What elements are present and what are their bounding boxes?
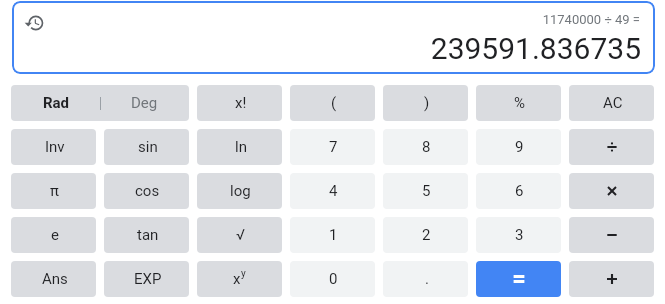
button[interactable]: Rad: [11, 85, 189, 121]
staticText: cos: [135, 182, 160, 200]
staticText: 9: [515, 138, 524, 156]
staticText: (: [331, 94, 337, 112]
button[interactable]: 8: [383, 129, 468, 165]
button[interactable]: 7: [290, 129, 375, 165]
staticText: 2: [422, 226, 431, 244]
button[interactable]: cos: [104, 173, 189, 209]
button[interactable]: log: [197, 173, 282, 209]
staticText: ln: [235, 138, 247, 156]
staticText: Rad: [43, 94, 70, 112]
staticText: 4: [329, 182, 338, 200]
button[interactable]: History: [13, 1, 57, 45]
button[interactable]: ln: [197, 129, 282, 165]
button[interactable]: Equals: [476, 261, 561, 297]
button[interactable]: Ans: [11, 261, 96, 297]
button[interactable]: 2: [383, 217, 468, 253]
button[interactable]: Divide: [569, 129, 654, 165]
staticText: tan: [137, 226, 159, 244]
button[interactable]: %: [476, 85, 561, 121]
staticText: 5: [422, 182, 431, 200]
staticText: x!: [235, 94, 247, 112]
button[interactable]: Subtract: [569, 217, 654, 253]
button[interactable]: Inv: [11, 129, 96, 165]
staticText: 1: [329, 226, 338, 244]
staticText: 11740000 ÷ 49 =: [12, 12, 640, 27]
staticText: 3: [515, 226, 524, 244]
staticText: .: [425, 270, 429, 288]
button[interactable]: sin: [104, 129, 189, 165]
staticText: ): [424, 94, 430, 112]
button[interactable]: (: [290, 85, 375, 121]
button[interactable]: e: [11, 217, 96, 253]
button[interactable]: 3: [476, 217, 561, 253]
button[interactable]: Add: [569, 261, 654, 297]
staticText: log: [230, 182, 251, 200]
button[interactable]: 1: [290, 217, 375, 253]
staticText: Deg: [131, 94, 158, 112]
staticText: 7: [329, 138, 338, 156]
button[interactable]: 9: [476, 129, 561, 165]
staticText: 8: [422, 138, 431, 156]
staticText: e: [51, 226, 59, 244]
button[interactable]: .: [383, 261, 468, 297]
button[interactable]: 4: [290, 173, 375, 209]
staticText: 239591.836735: [12, 31, 641, 66]
staticText: x: [233, 270, 241, 288]
button[interactable]: 5: [383, 173, 468, 209]
staticText: Inv: [45, 138, 65, 156]
staticText: √: [236, 226, 245, 244]
staticText: AC: [603, 94, 623, 112]
button[interactable]: ): [383, 85, 468, 121]
staticText: Ans: [42, 270, 68, 288]
staticText: EXP: [134, 270, 162, 288]
button[interactable]: Multiply: [569, 173, 654, 209]
button[interactable]: 6: [476, 173, 561, 209]
button[interactable]: x!: [197, 85, 282, 121]
button[interactable]: √: [197, 217, 282, 253]
staticText: %: [514, 94, 525, 112]
button[interactable]: x: [197, 261, 282, 297]
button[interactable]: EXP: [104, 261, 189, 297]
button[interactable]: 0: [290, 261, 375, 297]
staticText: sin: [138, 138, 158, 156]
staticText: π: [50, 182, 59, 200]
button[interactable]: π: [11, 173, 96, 209]
button[interactable]: AC: [569, 85, 654, 121]
staticText: y: [241, 268, 246, 280]
staticText: 0: [329, 270, 338, 288]
staticText: 6: [515, 182, 524, 200]
button[interactable]: tan: [104, 217, 189, 253]
